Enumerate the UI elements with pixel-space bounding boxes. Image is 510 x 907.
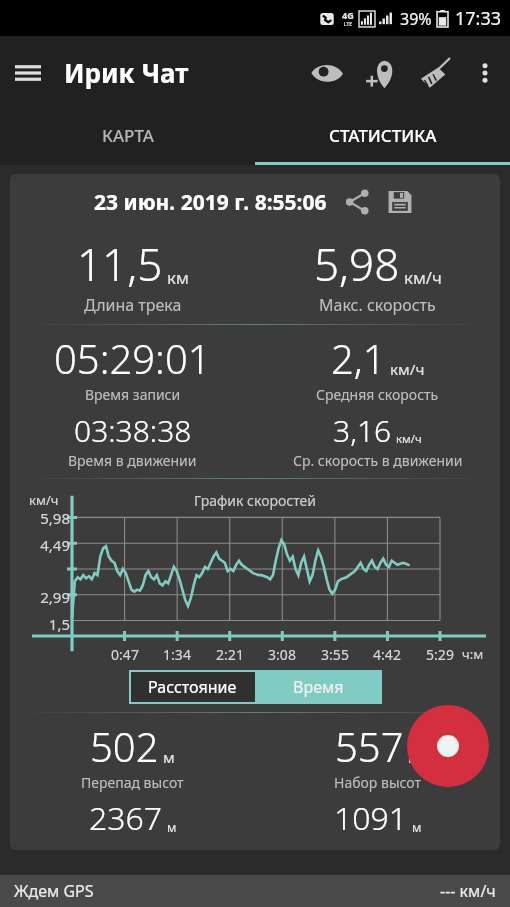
staticText: км (167, 266, 189, 289)
button[interactable]: Время (255, 670, 382, 704)
staticText: 3:08 (259, 645, 305, 664)
staticText: График скоростей (194, 491, 316, 510)
button[interactable]: Open navigation menu (0, 45, 56, 101)
staticText: 39% (400, 8, 432, 30)
staticText: км/ч (404, 266, 442, 289)
button[interactable]: Расстояние (129, 670, 255, 704)
staticText: 2:21 (207, 645, 253, 664)
staticText: м (167, 819, 177, 836)
staticText: 1091 (334, 796, 408, 840)
staticText: 4:42 (364, 645, 410, 664)
button[interactable]: Clear (408, 46, 462, 100)
button[interactable]: Save (383, 185, 417, 219)
staticText: 5:29 (417, 645, 463, 664)
staticText: 4G (342, 9, 354, 21)
staticText: Перепад высот (81, 773, 184, 792)
button[interactable]: Visibility (300, 46, 354, 100)
staticText: КАРТА (102, 124, 154, 147)
staticText: Ирик Чат (64, 55, 189, 90)
staticText: Расстояние (148, 676, 237, 698)
staticText: Время (293, 676, 344, 698)
staticText: --- км/ч (440, 880, 496, 902)
staticText: LTE (344, 21, 353, 28)
staticText: 1:34 (154, 645, 200, 664)
staticText: Ср. скорость в движении (293, 451, 463, 470)
button[interactable]: Add marker (354, 46, 408, 100)
staticText: Средняя скорость (316, 385, 439, 404)
staticText: ч:м (462, 645, 484, 663)
staticText: км/ч (390, 359, 425, 380)
staticText: СТАТИСТИКА (329, 124, 437, 147)
staticText: 557 (335, 719, 404, 773)
staticText: 03:38:38 (74, 410, 192, 451)
staticText: м (412, 819, 422, 836)
staticText: Длина трека (84, 294, 182, 316)
staticText: Время записи (85, 385, 181, 404)
staticText: 2,1 (331, 331, 386, 385)
staticText: 3,16 (333, 410, 392, 451)
button[interactable]: More options (462, 50, 508, 96)
staticText: м (163, 747, 175, 768)
staticText: 3:55 (312, 645, 358, 664)
staticText: км/ч (29, 491, 59, 509)
staticText: Набор высот (334, 773, 421, 792)
button[interactable]: КАРТА (0, 109, 255, 162)
staticText: 5,98 (10, 508, 70, 528)
staticText: Время в движении (68, 451, 197, 470)
button[interactable]: Share (341, 185, 375, 219)
staticText: м (408, 747, 420, 768)
staticText: 1,5 (10, 614, 70, 634)
staticText: 05:29:01 (54, 331, 211, 385)
staticText: 5,98 (314, 234, 400, 294)
staticText: 2367 (89, 796, 163, 840)
staticText: 17:33 (455, 6, 502, 31)
staticText: 23 июн. 2019 г. 8:55:06 (94, 188, 327, 217)
staticText: км/ч (396, 431, 422, 447)
staticText: Ждем GPS (14, 880, 94, 902)
staticText: Макс. скорость (319, 294, 436, 316)
button[interactable]: Start recording (407, 705, 489, 787)
staticText: 502 (90, 719, 159, 773)
staticText: 4,49 (10, 535, 70, 555)
button[interactable]: СТАТИСТИКА (255, 109, 510, 162)
staticText: 11,5 (77, 234, 163, 294)
staticText: 0:47 (102, 645, 148, 664)
staticText: 2,99 (10, 587, 70, 607)
